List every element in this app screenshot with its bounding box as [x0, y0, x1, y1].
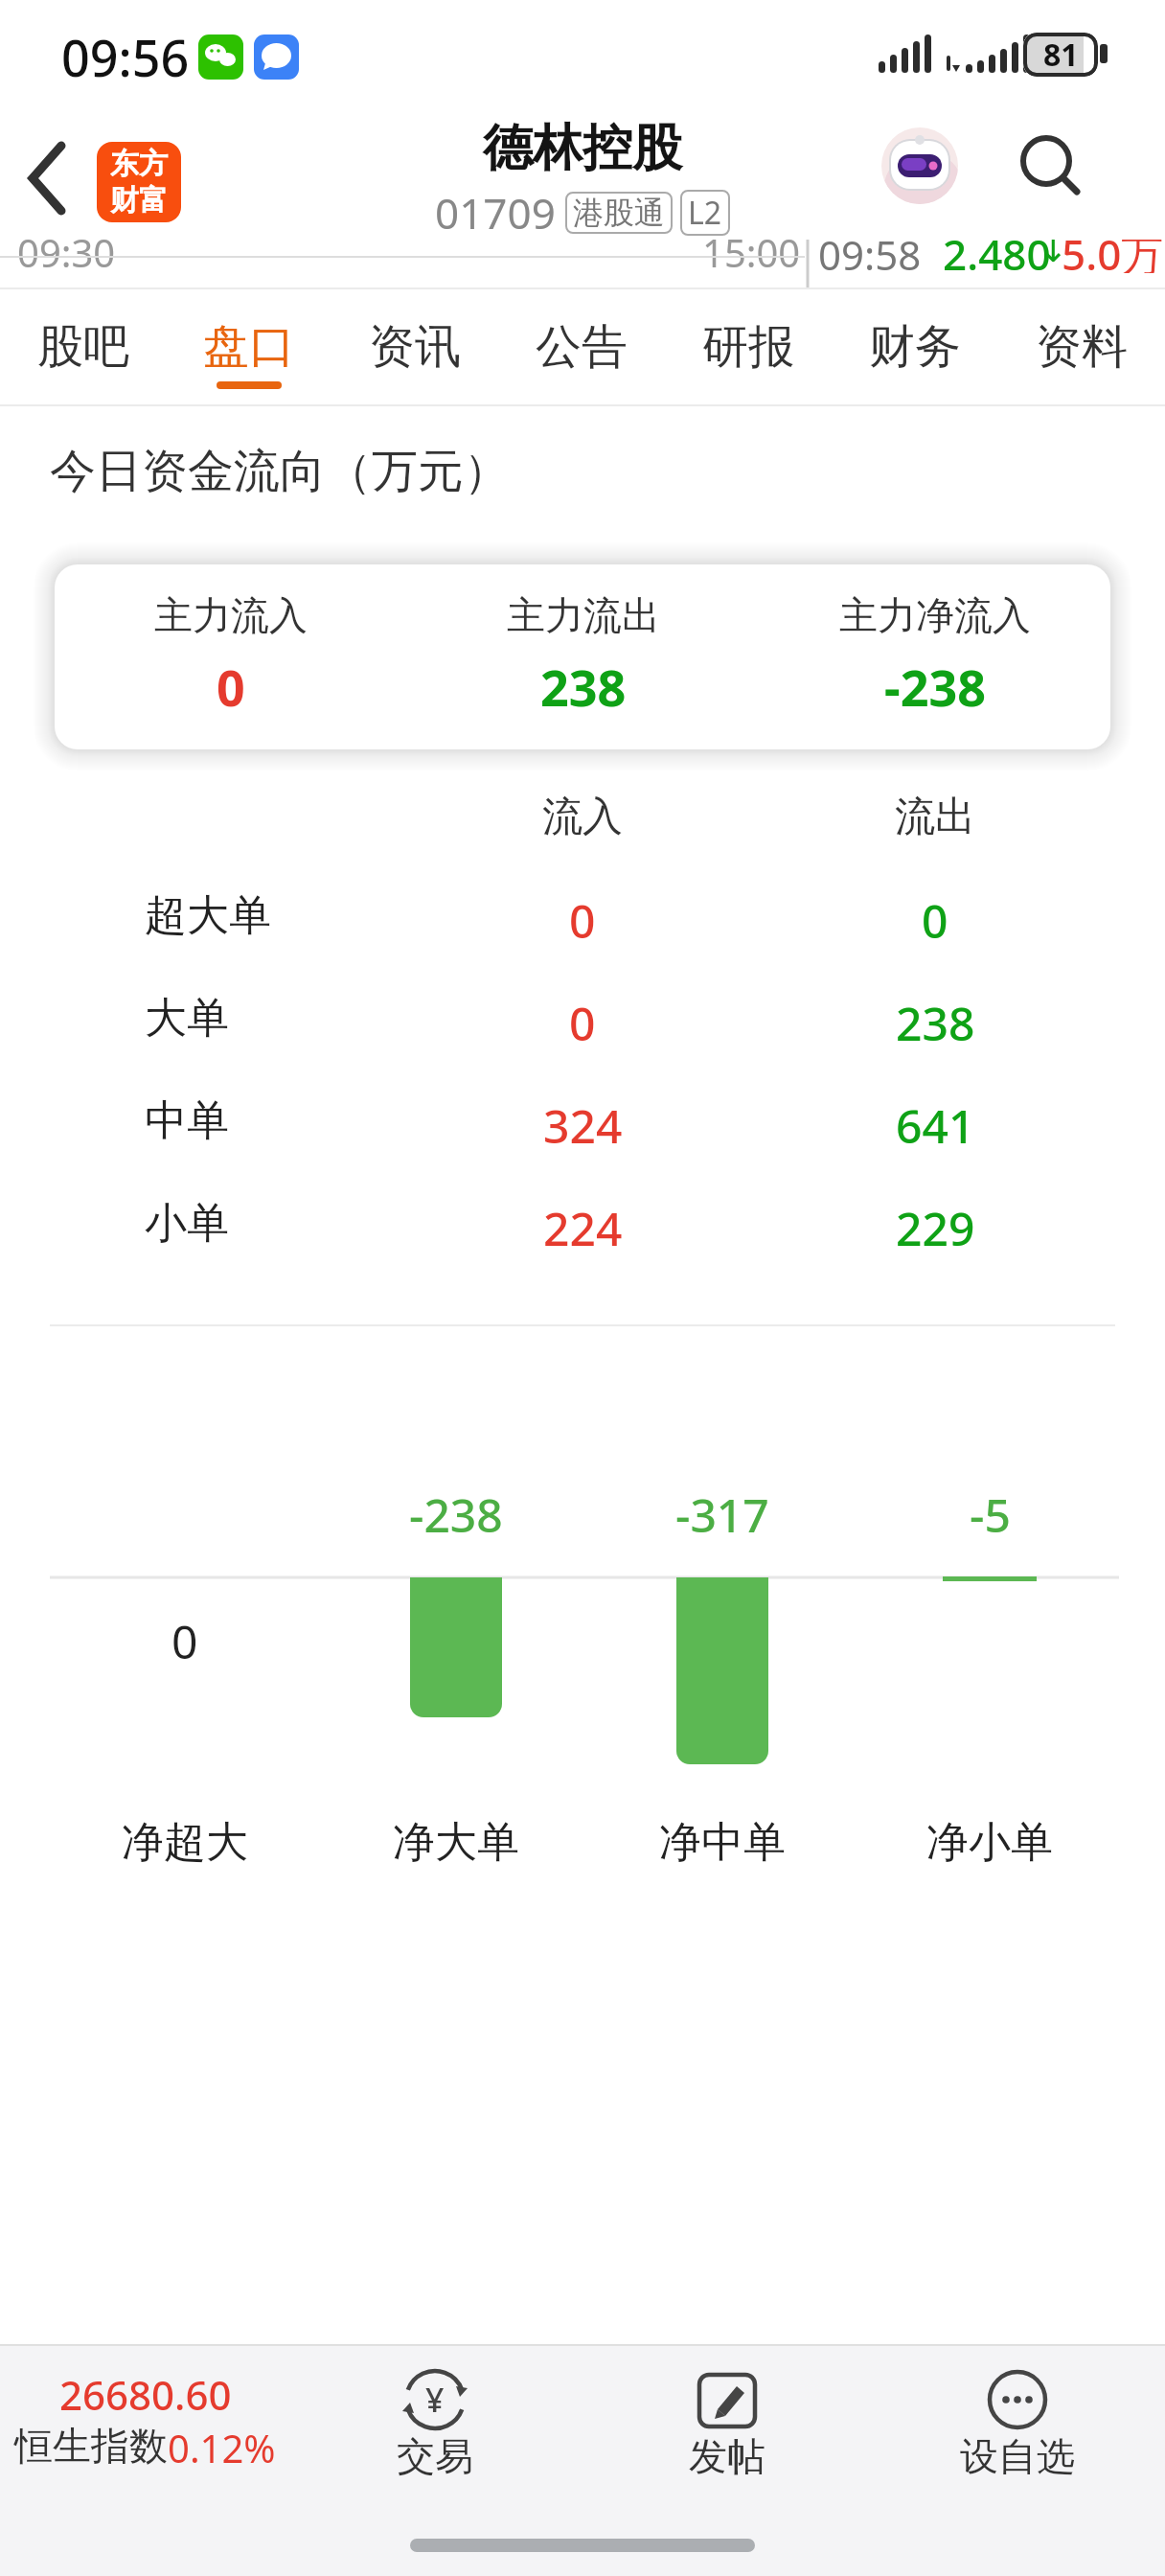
button[interactable]	[19, 138, 80, 218]
staticText: 资讯	[369, 318, 461, 376]
staticText: 净超大	[122, 1816, 248, 1869]
staticText: -238	[884, 653, 986, 721]
staticText: 229	[896, 1197, 975, 1259]
button[interactable]: ¥	[358, 2354, 512, 2526]
staticText: 中单	[145, 1094, 229, 1147]
staticText: 小单	[145, 1197, 229, 1250]
staticText: 交易	[397, 2432, 473, 2480]
staticText: 15:00	[702, 240, 801, 274]
staticText: 0	[569, 889, 596, 952]
staticText: 09:56	[61, 23, 190, 91]
staticText: -317	[675, 1483, 769, 1546]
staticText: L2	[688, 192, 722, 234]
staticText: 26680.60	[59, 2367, 232, 2422]
staticText: 股吧	[37, 318, 129, 376]
button[interactable]: 公告	[498, 287, 665, 406]
staticText: 224	[543, 1197, 623, 1259]
staticText: 德林控股	[483, 117, 682, 180]
staticText: 主力流入	[154, 591, 308, 639]
button[interactable]: 26680.60	[0, 2367, 289, 2473]
staticText: 资料	[1036, 318, 1128, 376]
staticText: 大单	[145, 992, 229, 1045]
staticText: 恒生指数	[14, 2422, 168, 2470]
staticText: 今日资金流向（万元）	[50, 443, 510, 500]
staticText: 238	[896, 992, 975, 1054]
staticText: 设自选	[960, 2432, 1075, 2480]
staticText: 净小单	[926, 1816, 1053, 1869]
staticText: 公告	[536, 318, 628, 376]
staticText: 0	[171, 1610, 198, 1672]
staticText: 主力净流入	[839, 591, 1031, 639]
staticText: 0.12%	[168, 2422, 276, 2473]
staticText: 0	[217, 653, 245, 721]
button[interactable]: 财务	[832, 287, 998, 406]
staticText: 港股通	[573, 194, 665, 232]
button[interactable]: 股吧	[0, 287, 166, 406]
button[interactable]: 发帖	[651, 2354, 804, 2526]
staticText: 东方	[110, 146, 168, 182]
button[interactable]: 设自选	[931, 2354, 1104, 2526]
staticText: 81	[1043, 34, 1079, 76]
button[interactable]: 资料	[998, 287, 1165, 406]
staticText: 0	[922, 889, 948, 952]
staticText: 5.0万	[1062, 240, 1164, 273]
staticText: 0	[569, 992, 596, 1054]
staticText: 2.480	[943, 240, 1051, 273]
staticText: 01709	[435, 184, 556, 241]
staticText: 净中单	[659, 1816, 786, 1869]
staticText: 超大单	[145, 889, 271, 942]
staticText: 财富	[110, 182, 168, 218]
staticText: 09:58	[818, 240, 922, 275]
staticText: 发帖	[689, 2432, 765, 2480]
staticText: 盘口	[203, 318, 295, 376]
staticText: 财务	[869, 318, 961, 376]
button[interactable]: 盘口	[166, 287, 331, 406]
staticText: 09:30	[17, 240, 116, 274]
staticText: 641	[896, 1094, 975, 1157]
staticText: 流出	[895, 792, 975, 842]
staticText: 324	[543, 1094, 623, 1157]
button[interactable]: 资讯	[331, 287, 498, 406]
button[interactable]	[1012, 126, 1088, 203]
staticText: -238	[409, 1483, 503, 1546]
staticText: 净大单	[393, 1816, 519, 1869]
button[interactable]: 东方	[97, 142, 181, 222]
button[interactable]: 研报	[665, 287, 832, 406]
staticText: ¥	[425, 2378, 445, 2422]
staticText: 238	[540, 653, 627, 721]
button[interactable]	[881, 127, 958, 204]
staticText: -5	[970, 1483, 1011, 1546]
staticText: 主力流出	[507, 591, 660, 639]
staticText: 研报	[702, 318, 794, 376]
staticText: ↓	[1039, 240, 1068, 270]
staticText: 流入	[542, 792, 623, 842]
